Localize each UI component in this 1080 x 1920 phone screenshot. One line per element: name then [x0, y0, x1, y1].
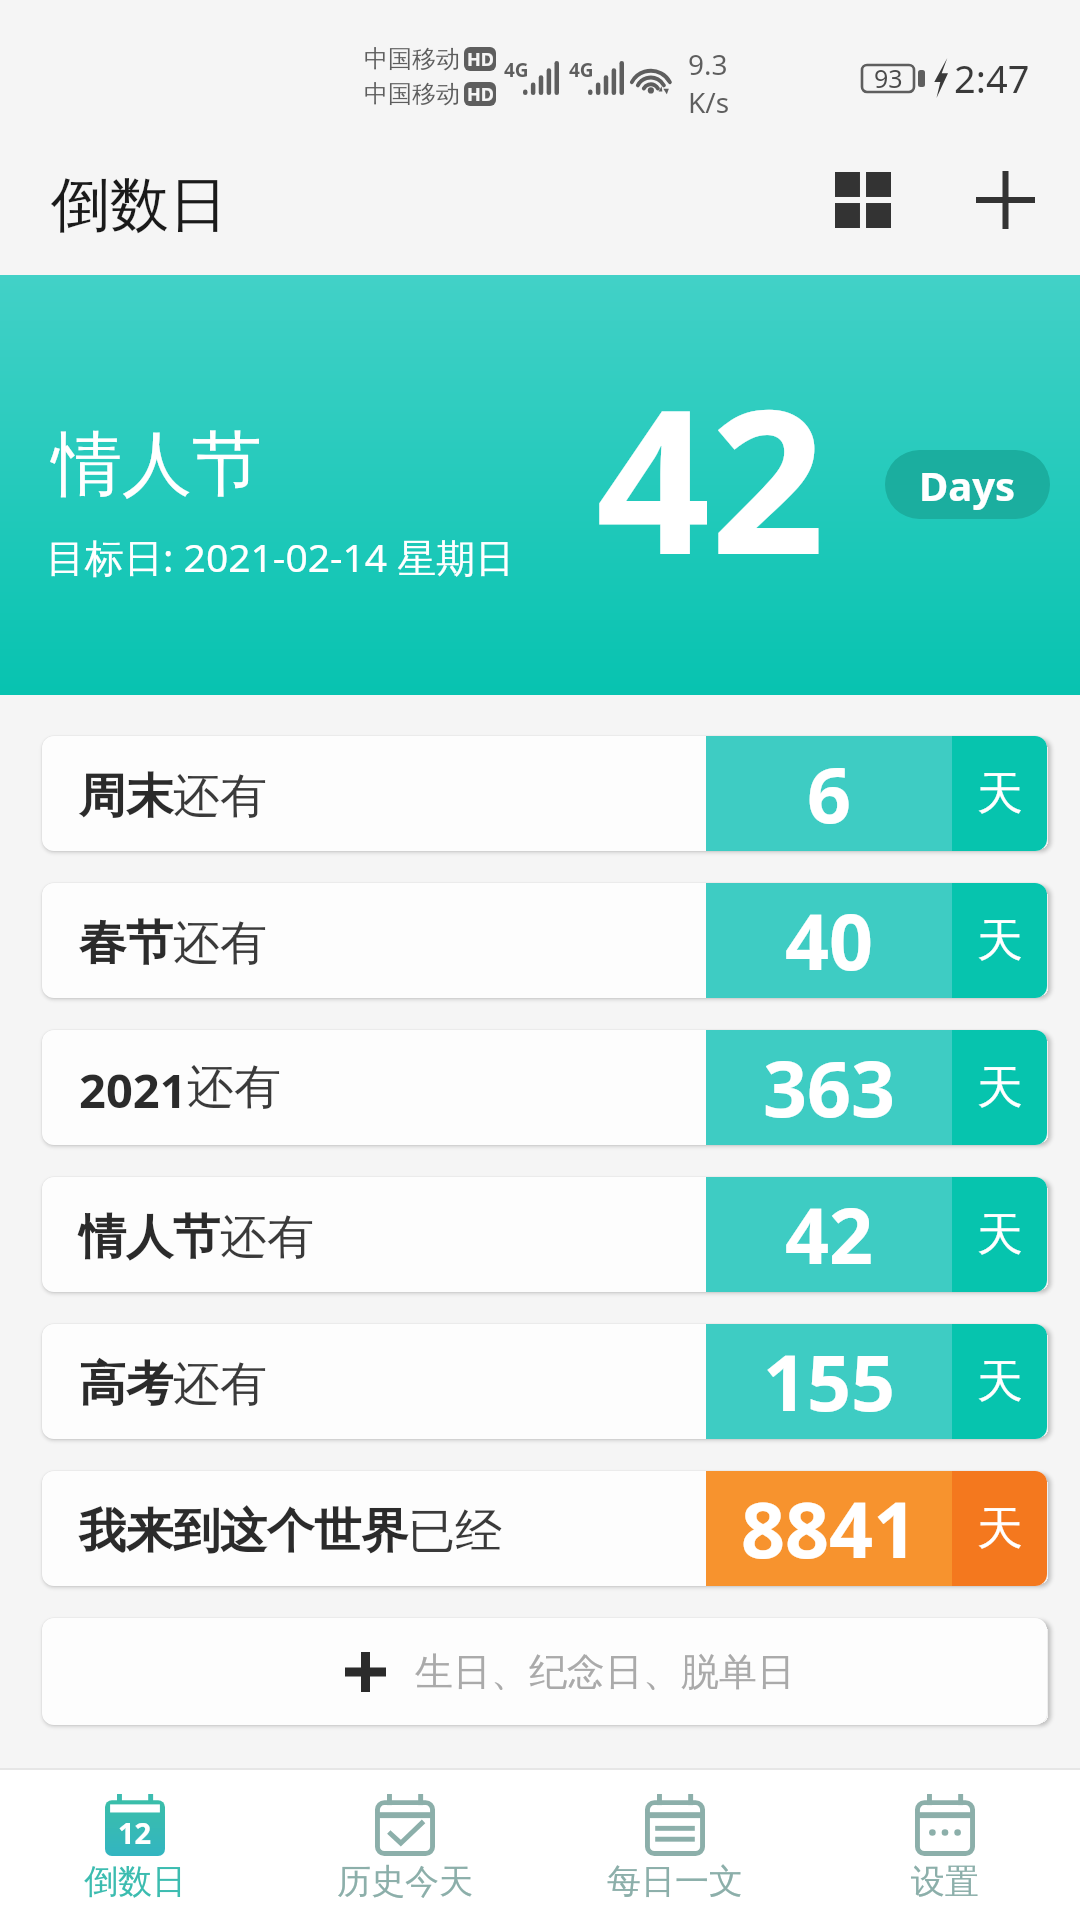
- staticText: 设置: [911, 1860, 979, 1903]
- button[interactable]: 我来到这个世界: [42, 1471, 1047, 1586]
- staticText: 周末: [79, 767, 173, 826]
- staticText: 2021: [79, 1058, 187, 1122]
- staticText: 155: [763, 1329, 896, 1434]
- staticText: 春节: [79, 914, 173, 973]
- staticText: 倒数日: [51, 168, 228, 242]
- staticText: 天: [977, 912, 1023, 970]
- staticText: 高考: [79, 1355, 173, 1414]
- button[interactable]: 情人节: [42, 1177, 1047, 1292]
- staticText: 天: [977, 1500, 1023, 1558]
- button[interactable]: 周末: [42, 736, 1047, 851]
- staticText: 8841: [741, 1476, 918, 1581]
- button[interactable]: 历史今天: [270, 1770, 540, 1920]
- staticText: 天: [977, 1206, 1023, 1264]
- staticText: HD: [467, 82, 494, 106]
- staticText: 42: [596, 340, 825, 612]
- button[interactable]: 设置: [810, 1770, 1080, 1920]
- staticText: 每日一文: [607, 1860, 743, 1903]
- staticText: 生日、纪念日、脱单日: [415, 1648, 795, 1696]
- staticText: 中国移动: [364, 79, 460, 109]
- staticText: 2:47: [954, 52, 1030, 104]
- staticText: HD: [467, 47, 494, 71]
- staticText: 我来到这个世界: [79, 1502, 408, 1561]
- button[interactable]: 12: [0, 1770, 270, 1920]
- staticText: 还有: [173, 914, 267, 973]
- staticText: 还有: [187, 1058, 281, 1117]
- staticText: 363: [763, 1035, 896, 1140]
- button[interactable]: 生日、纪念日、脱单日: [42, 1618, 1047, 1725]
- staticText: 天: [977, 1353, 1023, 1411]
- button[interactable]: Add countdown: [930, 140, 1080, 260]
- staticText: 还有: [173, 1355, 267, 1414]
- staticText: 历史今天: [337, 1860, 473, 1903]
- staticText: K/s: [688, 83, 730, 121]
- staticText: 情人节: [52, 421, 262, 509]
- staticText: 40: [785, 888, 874, 993]
- staticText: 还有: [220, 1208, 314, 1267]
- staticText: 4G: [504, 57, 529, 83]
- staticText: 12: [118, 1813, 152, 1852]
- staticText: 目标日: 2021-02-14 星期日: [46, 530, 515, 583]
- button[interactable]: 春节: [42, 883, 1047, 998]
- button[interactable]: 高考: [42, 1324, 1047, 1439]
- staticText: 倒数日: [84, 1860, 186, 1903]
- staticText: Days: [919, 458, 1016, 512]
- button[interactable]: Grid view: [780, 140, 946, 260]
- staticText: 4G: [569, 57, 594, 83]
- button[interactable]: 2021: [42, 1030, 1047, 1145]
- staticText: 中国移动: [364, 44, 460, 74]
- staticText: 天: [977, 765, 1023, 823]
- staticText: 42: [785, 1182, 874, 1287]
- staticText: 93: [874, 61, 903, 95]
- staticText: 还有: [173, 767, 267, 826]
- staticText: 9.3: [688, 45, 728, 83]
- staticText: 天: [977, 1059, 1023, 1117]
- button[interactable]: 每日一文: [540, 1770, 810, 1920]
- staticText: 情人节: [79, 1208, 220, 1267]
- staticText: 6: [807, 741, 852, 846]
- staticText: 已经: [408, 1502, 502, 1561]
